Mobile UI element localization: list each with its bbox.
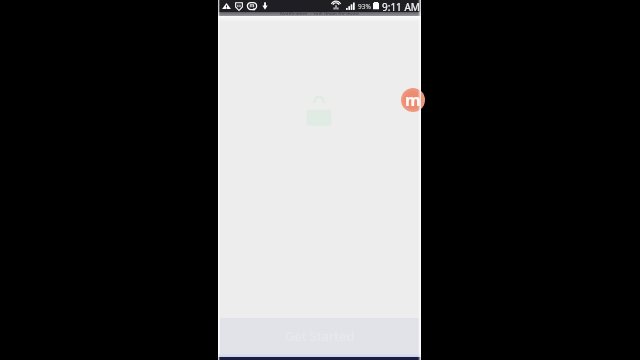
button[interactable]: Notification badge	[401, 88, 425, 112]
staticText: Notification · pull down for more	[280, 11, 359, 15]
staticText: 9:11 AM	[382, 0, 420, 12]
staticText: 93%	[358, 2, 371, 11]
button[interactable]: Get Started	[218, 318, 421, 354]
staticText: m	[405, 89, 421, 111]
